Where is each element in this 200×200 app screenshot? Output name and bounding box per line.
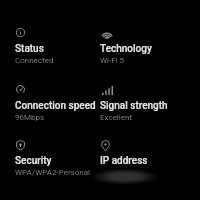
- button[interactable]: Status: [15, 28, 100, 76]
- staticText: Excellent: [100, 113, 133, 122]
- other: Status: [16, 28, 25, 37]
- staticText: Connection speed: [15, 100, 96, 112]
- button[interactable]: Signal strength: [100, 85, 185, 133]
- other: Connection speed: [16, 85, 25, 94]
- button[interactable]: Connection speed: [15, 85, 100, 133]
- staticText: Security: [15, 155, 52, 167]
- other: Technology: [101, 29, 113, 39]
- button[interactable]: IP address: [100, 140, 185, 188]
- other: Signal strength: [102, 86, 113, 95]
- staticText: IP address: [100, 155, 148, 167]
- button[interactable]: Security: [15, 140, 100, 188]
- staticText: WPA/WPA2-Personal: [15, 168, 91, 177]
- button[interactable]: Technology: [100, 28, 185, 76]
- staticText: Status: [15, 43, 44, 55]
- other: Security: [16, 140, 25, 150]
- staticText: Technology: [100, 43, 152, 55]
- staticText: Wi-Fi 5: [100, 56, 125, 65]
- staticText: Connected: [15, 56, 54, 65]
- staticText: 96Mbps: [15, 113, 45, 122]
- staticText: Signal strength: [100, 100, 168, 112]
- other: IP address: [101, 140, 110, 151]
